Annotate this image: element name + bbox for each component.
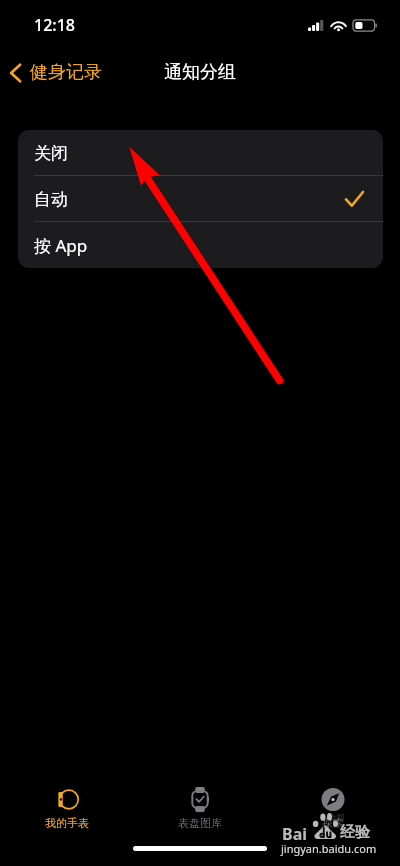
staticText: 探索 — [322, 816, 344, 830]
button[interactable]: 关闭 — [18, 130, 383, 176]
staticText: 验网 — [328, 812, 344, 822]
button[interactable]: 按 App — [18, 222, 383, 268]
staticText: 自动 — [34, 189, 68, 210]
staticText: 表盘图库 — [178, 816, 222, 830]
staticText: Bai — [282, 823, 308, 845]
staticText: 健身记录 — [30, 61, 102, 84]
staticText: 关闭 — [34, 143, 68, 164]
staticText: 我的手表 — [45, 816, 89, 830]
staticText: 通知分组 — [164, 61, 236, 84]
button[interactable]: 返回 健身记录 — [0, 55, 110, 90]
button[interactable]: 表盘图库 — [160, 786, 240, 830]
button[interactable]: 自动 — [18, 176, 383, 222]
staticText: 按 App — [34, 234, 88, 257]
button[interactable]: 我的手表 — [27, 786, 107, 830]
button[interactable]: 探索 — [293, 786, 373, 830]
staticText: 12:18 — [34, 14, 75, 36]
staticText: 经验 — [340, 823, 370, 842]
staticText: jingyan.baidu.com — [281, 841, 377, 856]
